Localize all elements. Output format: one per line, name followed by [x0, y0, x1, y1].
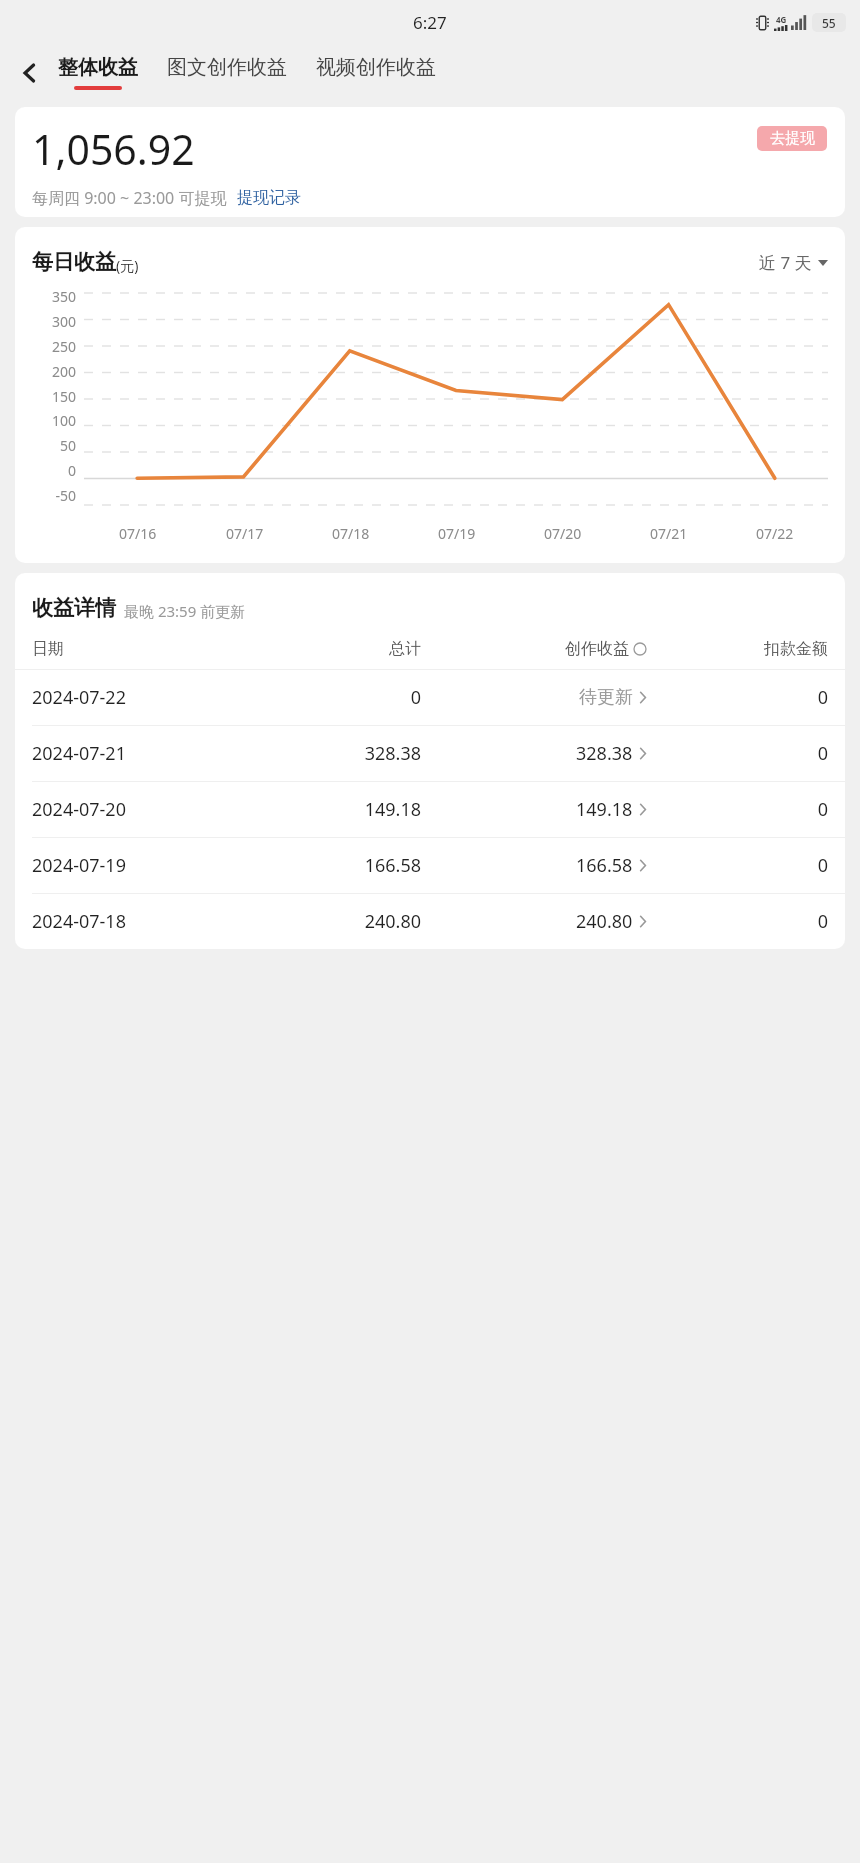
- staticText: 日期: [32, 639, 258, 659]
- staticText: 去提现: [770, 129, 815, 148]
- staticText: 2024-07-22: [32, 685, 258, 710]
- staticText: 6:27: [413, 11, 447, 34]
- staticText: 图文创作收益: [167, 55, 287, 80]
- staticText: 0: [647, 909, 828, 934]
- button[interactable]: 整体收益: [52, 53, 144, 92]
- staticText: 200: [51, 362, 76, 381]
- staticText: 166.58: [258, 853, 421, 878]
- staticText: 328.38: [258, 741, 421, 766]
- staticText: 149.18: [258, 797, 421, 822]
- staticText: 166.58: [576, 853, 633, 878]
- staticText: 240.80: [576, 909, 633, 934]
- staticText: 2024-07-19: [32, 853, 258, 878]
- staticText: 创作收益: [565, 639, 629, 659]
- button[interactable]: Back: [8, 51, 52, 95]
- staticText: 149.18: [576, 797, 633, 822]
- staticText: 整体收益: [58, 55, 138, 80]
- staticText: 07/17: [226, 524, 264, 543]
- staticText: 150: [51, 387, 76, 406]
- staticText: 待更新: [579, 686, 633, 709]
- staticText: 50: [59, 436, 76, 455]
- staticText: 0: [647, 685, 828, 710]
- staticText: -50: [55, 486, 76, 505]
- staticText: 收益详情: [32, 595, 116, 621]
- staticText: 0: [67, 461, 76, 480]
- button[interactable]: 2024-07-21: [15, 726, 845, 781]
- staticText: 2024-07-20: [32, 797, 258, 822]
- staticText: 扣款金额: [647, 639, 828, 659]
- staticText: 350: [51, 287, 76, 306]
- staticText: 240.80: [258, 909, 421, 934]
- staticText: 视频创作收益: [316, 55, 436, 80]
- staticText: 2024-07-21: [32, 741, 258, 766]
- staticText: 250: [51, 337, 76, 356]
- staticText: 07/21: [650, 524, 688, 543]
- staticText: 每日收益: [32, 249, 116, 275]
- button[interactable]: 图文创作收益: [161, 53, 293, 92]
- button[interactable]: 2024-07-18: [15, 894, 845, 949]
- button[interactable]: 去提现: [757, 126, 827, 151]
- button[interactable]: 提现记录: [237, 188, 301, 208]
- staticText: 0: [647, 853, 828, 878]
- staticText: 300: [51, 312, 76, 331]
- staticText: 07/22: [756, 524, 794, 543]
- staticText: 328.38: [576, 741, 633, 766]
- staticText: 0: [647, 797, 828, 822]
- staticText: 55: [822, 15, 836, 31]
- staticText: 07/19: [438, 524, 476, 543]
- staticText: 总计: [258, 639, 421, 659]
- staticText: 100: [51, 411, 76, 430]
- staticText: 0: [258, 685, 421, 710]
- button[interactable]: 2024-07-19: [15, 838, 845, 893]
- button[interactable]: 视频创作收益: [310, 53, 442, 92]
- staticText: 提现记录: [237, 188, 301, 208]
- staticText: 4G: [776, 14, 787, 25]
- button[interactable]: 2024-07-22: [15, 670, 845, 725]
- staticText: 07/20: [544, 524, 582, 543]
- button[interactable]: 2024-07-20: [15, 782, 845, 837]
- staticText: 每周四 9:00 ~ 23:00 可提现: [32, 187, 227, 209]
- staticText: 最晚 23:59 前更新: [124, 601, 246, 621]
- staticText: 近 7 天: [759, 251, 812, 274]
- staticText: 2024-07-18: [32, 909, 258, 934]
- staticText: (元): [116, 256, 139, 275]
- staticText: 1,056.92: [32, 121, 195, 177]
- staticText: 07/18: [332, 524, 370, 543]
- staticText: 0: [647, 741, 828, 766]
- button[interactable]: 近 7 天: [759, 251, 828, 274]
- staticText: 07/16: [119, 524, 157, 543]
